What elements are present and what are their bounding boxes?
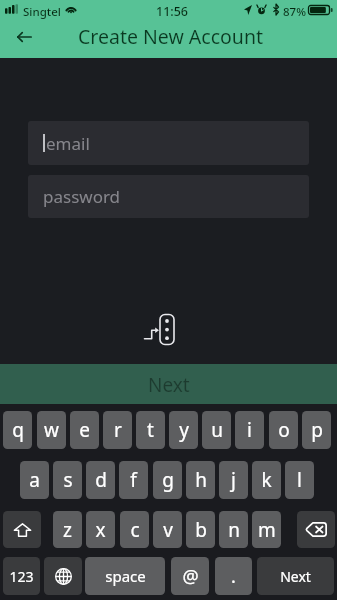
button[interactable]: @ xyxy=(171,557,209,595)
button[interactable]: Shift xyxy=(3,511,41,548)
button[interactable]: f xyxy=(119,461,148,499)
button[interactable]: y xyxy=(169,411,198,449)
button[interactable]: p xyxy=(302,411,331,449)
staticText: q xyxy=(12,417,24,443)
button[interactable]: . xyxy=(215,557,252,595)
staticText: y xyxy=(179,417,189,443)
button[interactable]: v xyxy=(153,511,182,548)
button[interactable]: n xyxy=(219,511,248,548)
staticText: u xyxy=(211,417,223,443)
button[interactable]: b xyxy=(186,511,215,548)
button[interactable]: Next xyxy=(257,557,334,595)
staticText: n xyxy=(228,517,240,543)
button[interactable]: s xyxy=(53,461,82,499)
button[interactable]: e xyxy=(70,411,99,449)
button[interactable]: c xyxy=(120,511,149,548)
staticText: f xyxy=(130,467,137,493)
staticText: password xyxy=(43,185,121,208)
button[interactable]: z xyxy=(53,511,82,548)
staticText: Singtel xyxy=(23,4,61,20)
button[interactable]: u xyxy=(202,411,231,449)
button[interactable]: d xyxy=(86,461,115,499)
staticText: r xyxy=(114,417,122,443)
staticText: Next xyxy=(280,567,311,586)
button[interactable]: j xyxy=(219,461,248,499)
staticText: 11:56 xyxy=(156,3,189,20)
button[interactable]: m xyxy=(252,511,281,548)
staticText: @ xyxy=(182,564,199,589)
staticText: w xyxy=(44,417,59,443)
button[interactable]: q xyxy=(3,411,32,449)
button[interactable]: Backspace xyxy=(297,511,335,548)
button[interactable]: Back xyxy=(0,19,48,54)
staticText: d xyxy=(95,467,107,493)
staticText: h xyxy=(195,467,207,493)
staticText: Create New Account xyxy=(78,23,263,50)
staticText: c xyxy=(130,517,140,543)
staticText: e xyxy=(79,417,90,443)
staticText: 123 xyxy=(9,567,34,586)
button[interactable]: email xyxy=(28,121,309,165)
button[interactable]: w xyxy=(37,411,66,449)
button[interactable]: a xyxy=(20,461,49,499)
staticText: l xyxy=(297,467,302,493)
staticText: . xyxy=(231,564,236,589)
button[interactable]: i xyxy=(235,411,264,449)
staticText: x xyxy=(95,517,106,543)
staticText: v xyxy=(163,517,173,543)
staticText: k xyxy=(261,467,272,493)
button[interactable]: k xyxy=(252,461,281,499)
button[interactable]: g xyxy=(153,461,182,499)
staticText: space xyxy=(105,566,146,586)
staticText: i xyxy=(247,417,252,443)
button[interactable]: Next xyxy=(0,364,337,406)
button[interactable]: l xyxy=(285,461,314,499)
staticText: j xyxy=(231,467,236,493)
staticText: z xyxy=(63,517,72,543)
staticText: m xyxy=(258,517,276,543)
button[interactable]: space xyxy=(85,557,165,595)
staticText: t xyxy=(147,417,154,443)
button[interactable]: h xyxy=(186,461,215,499)
staticText: Next xyxy=(148,372,190,398)
button[interactable]: password xyxy=(28,175,309,218)
staticText: email xyxy=(46,132,90,155)
staticText: p xyxy=(311,417,323,443)
button[interactable]: 123 xyxy=(3,557,40,595)
staticText: 87% xyxy=(283,4,306,20)
staticText: b xyxy=(195,517,207,543)
button[interactable]: Switch keyboard language xyxy=(44,557,82,595)
button[interactable]: o xyxy=(269,411,298,449)
staticText: s xyxy=(63,467,73,493)
button[interactable]: x xyxy=(86,511,115,548)
staticText: a xyxy=(29,467,40,493)
staticText: o xyxy=(278,417,290,443)
button[interactable]: t xyxy=(136,411,165,449)
staticText: g xyxy=(162,467,174,493)
button[interactable]: r xyxy=(103,411,132,449)
